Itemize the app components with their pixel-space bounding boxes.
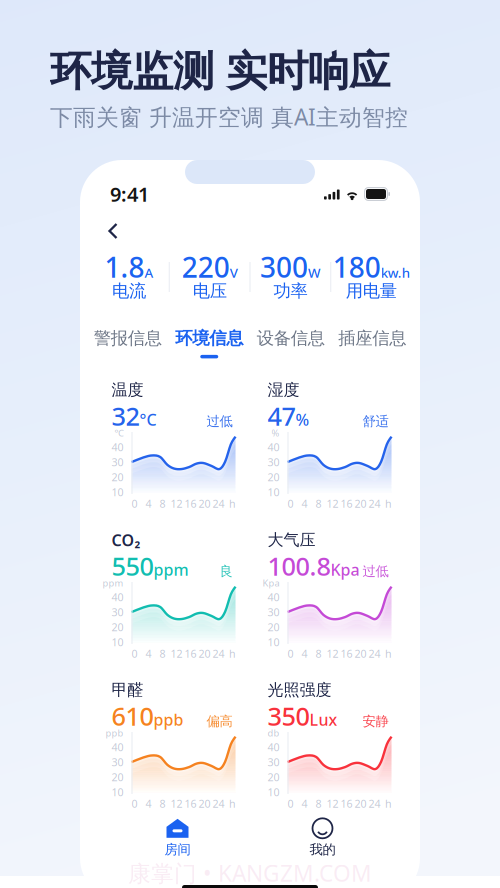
- staticText: 20: [267, 770, 279, 784]
- staticText: 12: [170, 796, 182, 811]
- staticText: 电压: [193, 280, 227, 302]
- staticText: %: [271, 427, 279, 439]
- button[interactable]: 插座信息: [331, 306, 413, 380]
- staticText: 4: [301, 796, 307, 811]
- staticText: 8: [159, 496, 165, 511]
- button[interactable]: 环境信息: [168, 306, 250, 380]
- staticText: h: [229, 646, 236, 661]
- staticText: h: [385, 646, 392, 661]
- staticText: CO₂: [111, 529, 140, 551]
- staticText: Lux: [309, 709, 337, 730]
- staticText: 20: [198, 796, 210, 811]
- staticText: 12: [326, 646, 338, 661]
- staticText: %: [295, 409, 309, 430]
- staticText: 用电量: [346, 280, 397, 302]
- staticText: 40: [111, 590, 123, 604]
- staticText: 12: [326, 796, 338, 811]
- staticText: 警报信息: [94, 328, 162, 349]
- staticText: 安静: [362, 713, 388, 730]
- staticText: 0: [131, 646, 137, 661]
- staticText: 10: [267, 785, 279, 799]
- staticText: 10: [111, 485, 123, 499]
- button[interactable]: Back: [102, 216, 124, 245]
- staticText: 16: [340, 496, 352, 511]
- staticText: 4: [301, 496, 307, 511]
- staticText: 4: [145, 796, 151, 811]
- staticText: 20: [198, 646, 210, 661]
- staticText: 良: [219, 563, 232, 580]
- staticText: 30: [267, 605, 279, 619]
- staticText: 20: [111, 620, 123, 634]
- staticText: 8: [159, 796, 165, 811]
- staticText: 10: [111, 635, 123, 649]
- staticText: 24: [368, 496, 380, 511]
- staticText: h: [385, 796, 392, 811]
- staticText: 40: [267, 440, 279, 454]
- staticText: 24: [368, 646, 380, 661]
- staticText: 24: [212, 646, 224, 661]
- staticText: 40: [267, 740, 279, 754]
- staticText: 9:41: [110, 181, 149, 207]
- staticText: 220: [182, 248, 230, 286]
- staticText: 4: [145, 496, 151, 511]
- staticText: 20: [111, 470, 123, 484]
- staticText: A: [144, 264, 153, 281]
- staticText: 24: [212, 496, 224, 511]
- button[interactable]: 警报信息: [87, 306, 168, 380]
- staticText: Kpa: [262, 577, 279, 589]
- staticText: db: [267, 727, 279, 739]
- staticText: h: [229, 796, 236, 811]
- staticText: ppb: [105, 727, 123, 739]
- staticText: 4: [301, 646, 307, 661]
- button[interactable]: 房间: [105, 818, 250, 858]
- staticText: 20: [267, 620, 279, 634]
- staticText: 30: [267, 455, 279, 469]
- staticText: Kpa: [330, 559, 359, 580]
- staticText: V: [230, 264, 238, 281]
- staticText: 10: [267, 485, 279, 499]
- staticText: 0: [287, 646, 293, 661]
- staticText: 20: [267, 470, 279, 484]
- staticText: 30: [111, 605, 123, 619]
- staticText: 房间: [164, 841, 190, 858]
- staticText: 大气压: [267, 530, 315, 550]
- staticText: 我的: [309, 841, 335, 858]
- staticText: 12: [326, 496, 338, 511]
- staticText: 8: [315, 796, 321, 811]
- staticText: 300: [260, 248, 308, 286]
- staticText: 30: [111, 455, 123, 469]
- staticText: 180: [333, 248, 381, 286]
- staticText: 20: [198, 496, 210, 511]
- staticText: 光照强度: [267, 680, 331, 700]
- staticText: 16: [340, 646, 352, 661]
- staticText: 康掌门 • KANGZM.COM: [128, 858, 372, 888]
- button[interactable]: 我的: [250, 818, 395, 858]
- staticText: 电流: [112, 280, 146, 302]
- staticText: 30: [111, 755, 123, 769]
- staticText: 8: [159, 646, 165, 661]
- staticText: 350: [267, 699, 309, 733]
- staticText: 20: [354, 796, 366, 811]
- staticText: 32: [111, 399, 139, 433]
- staticText: 4: [145, 646, 151, 661]
- button[interactable]: 设备信息: [250, 306, 331, 380]
- staticText: 温度: [111, 380, 143, 400]
- staticText: 40: [111, 740, 123, 754]
- staticText: h: [385, 496, 392, 511]
- staticText: 8: [315, 496, 321, 511]
- staticText: 功率: [273, 280, 307, 302]
- staticText: 过低: [362, 563, 388, 580]
- staticText: 湿度: [267, 380, 299, 400]
- staticText: 舒适: [362, 413, 388, 430]
- staticText: 偏高: [206, 713, 232, 730]
- staticText: 0: [131, 796, 137, 811]
- staticText: 10: [111, 785, 123, 799]
- staticText: 16: [184, 646, 196, 661]
- staticText: 100.8: [267, 549, 330, 583]
- staticText: W: [308, 264, 321, 281]
- staticText: 20: [354, 646, 366, 661]
- staticText: 16: [340, 796, 352, 811]
- staticText: 0: [131, 496, 137, 511]
- staticText: h: [229, 496, 236, 511]
- staticText: 550: [111, 549, 153, 583]
